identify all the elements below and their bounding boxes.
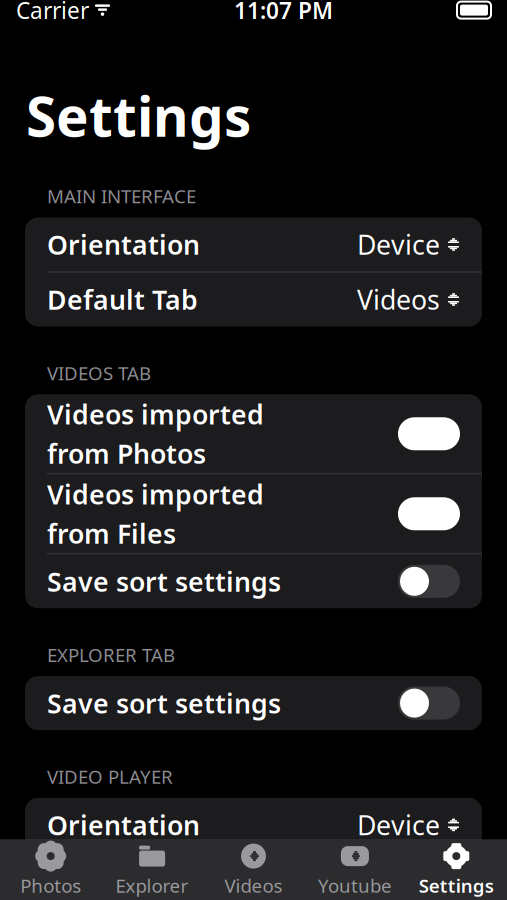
button[interactable]: Videos imported — [25, 394, 482, 473]
button[interactable]: Save sort settings — [25, 676, 482, 730]
button[interactable]: Youtube — [304, 842, 406, 898]
staticText: 11:07 PM — [234, 0, 333, 25]
staticText: from Photos — [47, 436, 206, 471]
staticText: Videos — [224, 873, 282, 898]
staticText: Carrier — [16, 0, 89, 25]
button[interactable]: Orientation — [25, 217, 482, 271]
staticText: Photos — [20, 873, 81, 898]
staticText: Orientation — [47, 227, 200, 262]
staticText: Orientation — [47, 807, 200, 843]
button[interactable]: Default Tab — [25, 272, 482, 326]
staticText: Save sort settings — [47, 685, 281, 721]
button[interactable]: Videos imported — [25, 474, 482, 553]
staticText: Settings — [419, 873, 494, 898]
staticText: Videos — [357, 282, 440, 317]
staticText: Save sort settings — [47, 564, 281, 599]
staticText: Device — [357, 807, 440, 843]
staticText: VIDEOS TAB — [47, 360, 151, 385]
button[interactable]: Orientation — [25, 798, 482, 852]
staticText: Explorer — [116, 873, 189, 898]
staticText: Videos imported — [47, 476, 264, 512]
staticText: Settings — [26, 79, 251, 152]
button[interactable]: Autoplay — [25, 853, 482, 900]
button[interactable]: Save sort settings — [25, 554, 482, 608]
staticText: VIDEO PLAYER — [47, 764, 173, 789]
staticText: Autoplay — [47, 862, 165, 898]
button[interactable]: Explorer — [101, 842, 203, 898]
staticText: Device — [357, 227, 440, 262]
button[interactable]: Videos — [203, 842, 304, 898]
staticText: MAIN INTERFACE — [47, 184, 196, 208]
staticText: EXPLORER TAB — [47, 642, 175, 667]
staticText: Default Tab — [47, 282, 198, 317]
button[interactable]: Photos — [0, 842, 101, 898]
button[interactable]: Settings — [406, 842, 507, 898]
staticText: Youtube — [318, 873, 392, 898]
staticText: from Files — [47, 516, 176, 551]
staticText: Videos imported — [47, 396, 264, 432]
